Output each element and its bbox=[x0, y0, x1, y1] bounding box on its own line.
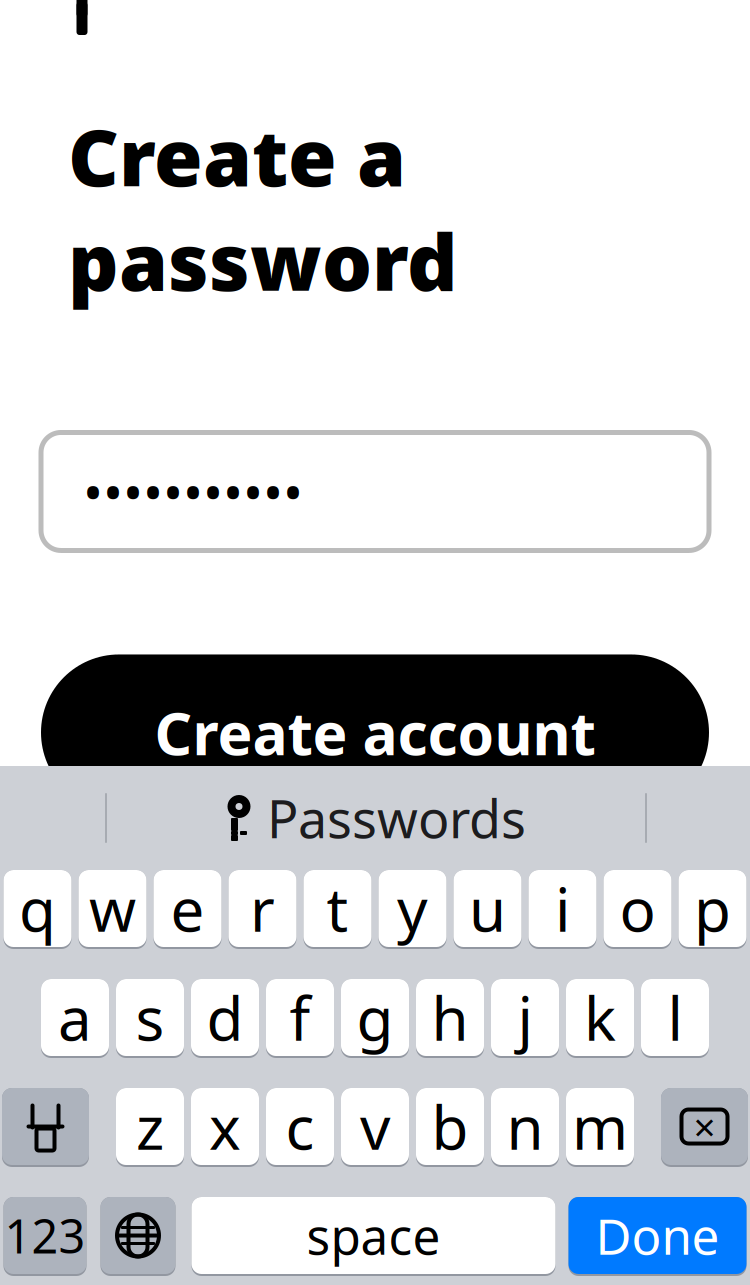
staticText: s bbox=[135, 978, 164, 1057]
button[interactable]: m bbox=[566, 1088, 634, 1167]
button[interactable]: v bbox=[341, 1088, 409, 1167]
staticText: p bbox=[694, 869, 731, 948]
staticText: t bbox=[326, 869, 348, 948]
staticText: Passwords bbox=[267, 783, 526, 853]
button[interactable]: y bbox=[378, 870, 446, 949]
button[interactable]: Next keyboard bbox=[100, 1197, 175, 1276]
button[interactable]: x bbox=[191, 1088, 259, 1167]
staticText: d bbox=[206, 978, 243, 1057]
button[interactable]: c bbox=[266, 1088, 334, 1167]
staticText: × bbox=[693, 1101, 715, 1152]
button[interactable]: Back bbox=[50, 0, 114, 41]
staticText: ••••••••••• bbox=[83, 456, 303, 527]
button[interactable]: h bbox=[416, 979, 484, 1058]
button[interactable]: i bbox=[528, 870, 596, 949]
button[interactable]: k bbox=[566, 979, 634, 1058]
staticText: b bbox=[431, 1087, 468, 1166]
staticText: r bbox=[250, 869, 275, 948]
staticText: i bbox=[555, 869, 570, 948]
button[interactable]: o bbox=[603, 870, 671, 949]
staticText: y bbox=[397, 869, 428, 948]
staticText: Done bbox=[595, 1203, 719, 1268]
staticText: g bbox=[356, 978, 393, 1057]
button[interactable]: q bbox=[3, 870, 71, 949]
staticText: v bbox=[360, 1087, 390, 1166]
button[interactable]: Delete bbox=[661, 1088, 748, 1167]
staticText: 123 bbox=[4, 1204, 85, 1266]
staticText: w bbox=[89, 869, 136, 948]
button[interactable]: w bbox=[78, 870, 146, 949]
staticText: q bbox=[19, 869, 56, 948]
button[interactable]: s bbox=[116, 979, 184, 1058]
button[interactable]: z bbox=[116, 1088, 184, 1167]
staticText: l bbox=[667, 978, 682, 1057]
button[interactable]: e bbox=[153, 870, 221, 949]
button[interactable]: u bbox=[453, 870, 521, 949]
staticText: a bbox=[58, 978, 92, 1057]
button[interactable]: g bbox=[341, 979, 409, 1058]
button[interactable]: r bbox=[228, 870, 296, 949]
staticText: z bbox=[136, 1087, 164, 1166]
staticText: o bbox=[619, 869, 655, 948]
button[interactable]: j bbox=[491, 979, 559, 1058]
staticText: n bbox=[506, 1087, 543, 1166]
staticText: Create a password bbox=[68, 103, 458, 312]
button[interactable]: a bbox=[41, 979, 109, 1058]
staticText: m bbox=[572, 1087, 628, 1166]
button[interactable]: f bbox=[266, 979, 334, 1058]
staticText: c bbox=[285, 1087, 314, 1166]
button[interactable]: d bbox=[191, 979, 259, 1058]
staticText: f bbox=[289, 978, 310, 1057]
button[interactable]: Create account bbox=[41, 654, 709, 810]
button[interactable]: 123 bbox=[3, 1197, 86, 1276]
button[interactable]: t bbox=[303, 870, 371, 949]
button[interactable]: n bbox=[491, 1088, 559, 1167]
button[interactable]: space bbox=[191, 1197, 555, 1276]
button[interactable]: Shift bbox=[2, 1088, 89, 1167]
staticText: x bbox=[209, 1087, 241, 1166]
staticText: e bbox=[170, 869, 204, 948]
staticText: k bbox=[584, 978, 616, 1057]
staticText: j bbox=[517, 978, 532, 1057]
button[interactable]: l bbox=[641, 979, 709, 1058]
staticText: u bbox=[469, 869, 506, 948]
staticText: space bbox=[306, 1203, 440, 1268]
button[interactable]: Passwords bbox=[204, 778, 546, 858]
button[interactable]: Done bbox=[568, 1197, 746, 1276]
button[interactable]: p bbox=[678, 870, 746, 949]
staticText: h bbox=[431, 978, 468, 1057]
button[interactable]: b bbox=[416, 1088, 484, 1167]
staticText: Create account bbox=[154, 693, 595, 771]
